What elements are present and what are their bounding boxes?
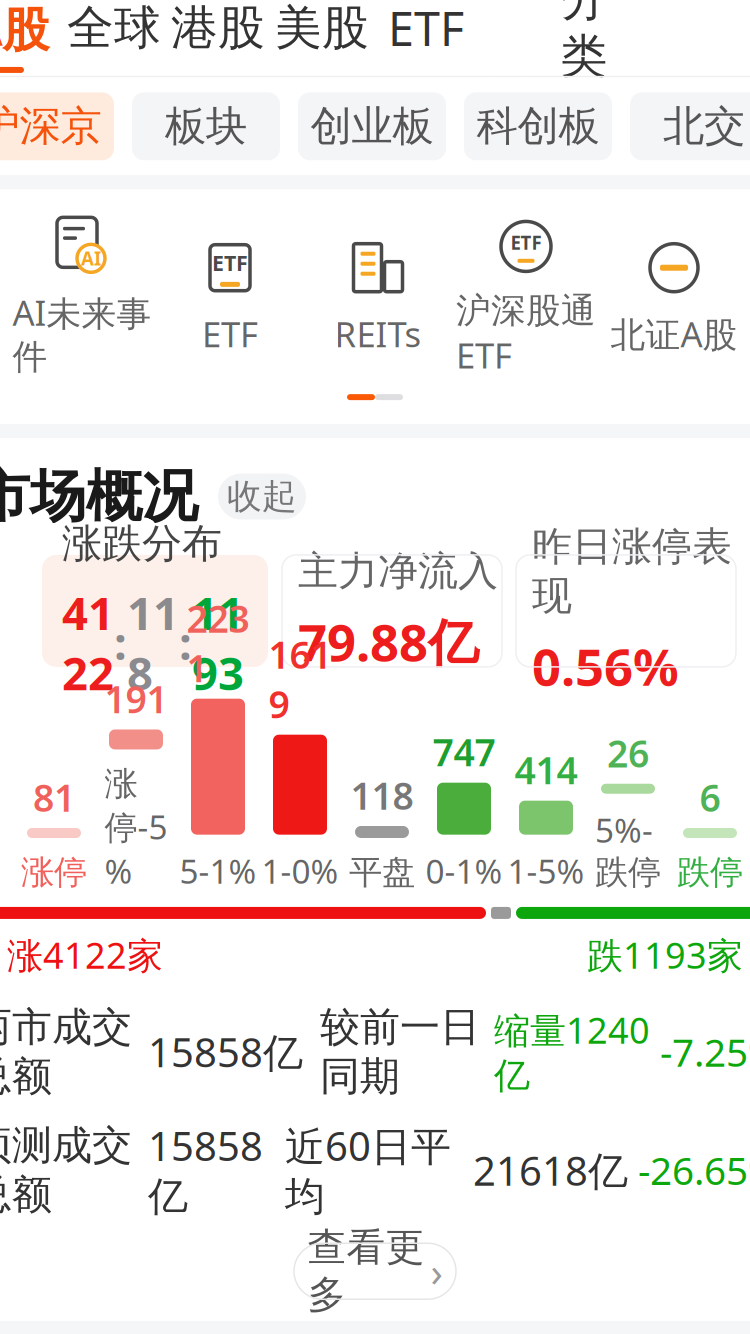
- button[interactable]: 创业板: [298, 92, 446, 160]
- staticText: 涨停-5%: [104, 763, 167, 893]
- button[interactable]: 北交: [630, 92, 750, 160]
- button[interactable]: ETF: [452, 217, 600, 378]
- staticText: 市场概况: [0, 462, 198, 531]
- staticText: 5-1%: [179, 849, 256, 893]
- staticText: 0-1%: [425, 849, 502, 893]
- button[interactable]: 收起: [218, 473, 306, 519]
- staticText: 收起: [227, 475, 297, 518]
- staticText: 涨4122家: [7, 931, 163, 979]
- staticText: 查看更多: [307, 1224, 424, 1319]
- staticText: 预测成交总额: [0, 1121, 132, 1219]
- staticText: ETF: [212, 248, 248, 277]
- button[interactable]: 板块: [132, 92, 280, 160]
- button[interactable]: 港股: [166, 0, 270, 72]
- staticText: 21618亿: [473, 1143, 628, 1197]
- button[interactable]: 科创板: [464, 92, 612, 160]
- staticText: AI未来事件: [12, 289, 151, 378]
- button[interactable]: 美股: [270, 0, 374, 72]
- staticText: ETF: [388, 0, 464, 59]
- button[interactable]: A股: [0, 0, 62, 72]
- staticText: 15858亿: [148, 1119, 263, 1221]
- staticText: 1193: [192, 582, 244, 703]
- staticText: 1-5%: [507, 849, 584, 893]
- staticText: 沪深股通ETF: [456, 289, 596, 378]
- button[interactable]: ETF: [156, 239, 304, 357]
- button[interactable]: AI: [8, 217, 156, 378]
- staticText: 板块: [165, 101, 247, 152]
- staticText: 美股: [275, 0, 369, 56]
- staticText: :: [114, 612, 127, 673]
- staticText: 5%-跌停: [595, 808, 661, 893]
- staticText: 118: [350, 770, 413, 820]
- staticText: 创业板: [310, 101, 433, 152]
- staticText: 2231: [186, 593, 249, 693]
- staticText: 涨跌分布: [62, 519, 222, 568]
- staticText: 分类: [560, 0, 607, 85]
- button[interactable]: 北证A股: [600, 239, 748, 357]
- staticText: 全球: [67, 0, 161, 56]
- staticText: AI: [81, 246, 101, 271]
- staticText: 15858亿: [148, 1025, 303, 1078]
- staticText: ETF: [510, 230, 541, 255]
- staticText: 1619: [268, 629, 331, 729]
- staticText: 沪深京: [0, 101, 101, 152]
- staticText: :: [179, 612, 192, 673]
- staticText: 4122: [62, 582, 114, 703]
- staticText: 跌停: [677, 852, 743, 893]
- staticText: 昨日涨停表现: [532, 522, 732, 620]
- staticText: 79.88亿: [298, 608, 479, 675]
- staticText: ETF: [202, 311, 258, 357]
- staticText: 191: [104, 674, 167, 723]
- staticText: 平盘: [349, 852, 415, 893]
- button[interactable]: 全球: [62, 0, 166, 72]
- staticText: 118: [127, 582, 179, 703]
- staticText: 港股: [171, 0, 265, 56]
- staticText: -26.65%: [638, 1144, 750, 1196]
- staticText: -7.25%: [660, 1026, 750, 1077]
- staticText: ›: [430, 1245, 442, 1298]
- staticText: A股: [0, 0, 49, 59]
- staticText: 北交: [663, 101, 745, 152]
- staticText: 科创板: [476, 101, 599, 152]
- button[interactable]: REITs: [304, 239, 452, 357]
- staticText: 涨停: [21, 852, 87, 893]
- staticText: 81: [33, 772, 75, 822]
- staticText: 跌1193家: [587, 931, 743, 979]
- staticText: 26: [607, 728, 649, 778]
- staticText: 缩量1240亿: [494, 1006, 650, 1098]
- staticText: 主力净流入: [298, 547, 498, 596]
- button[interactable]: 沪深京: [0, 92, 114, 160]
- staticText: 北证A股: [610, 311, 737, 357]
- staticText: 414: [514, 745, 577, 795]
- button[interactable]: 分类: [538, 0, 630, 72]
- staticText: REITs: [334, 311, 421, 357]
- staticText: 6: [699, 772, 720, 822]
- button[interactable]: ETF: [374, 0, 478, 72]
- staticText: 两市成交总额: [0, 1003, 132, 1101]
- staticText: 近60日平均: [285, 1119, 451, 1221]
- button[interactable]: 查看更多: [294, 1243, 456, 1299]
- staticText: 747: [432, 727, 495, 777]
- staticText: 较前一日同期: [320, 1003, 480, 1101]
- staticText: 1-0%: [261, 849, 338, 893]
- staticText: 0.56%: [532, 632, 679, 700]
